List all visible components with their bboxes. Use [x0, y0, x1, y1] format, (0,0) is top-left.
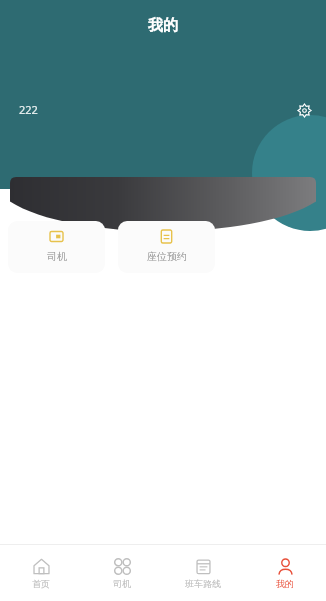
button[interactable]: 首页: [0, 545, 81, 601]
button[interactable]: 我的: [244, 545, 326, 601]
staticText: 司机: [47, 250, 67, 263]
staticText: 我的: [276, 578, 294, 589]
staticText: 首页: [32, 578, 50, 589]
button[interactable]: 司机: [81, 545, 162, 601]
button[interactable]: 座位预约: [118, 221, 215, 273]
staticText: 班车路线: [185, 578, 221, 589]
button[interactable]: 班车路线: [162, 545, 244, 601]
staticText: 222: [19, 102, 38, 117]
staticText: 我的: [148, 16, 178, 35]
staticText: 司机: [113, 578, 131, 589]
staticText: 座位预约: [147, 250, 187, 263]
button[interactable]: Settings: [291, 97, 317, 123]
button[interactable]: 司机: [8, 221, 105, 273]
